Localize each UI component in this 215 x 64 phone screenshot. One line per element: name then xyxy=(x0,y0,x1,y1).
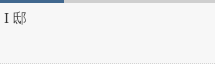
other: Progress 30 percent xyxy=(0,0,215,3)
button[interactable]: I 邸 xyxy=(0,3,215,64)
button[interactable]: Progress 30 percent xyxy=(0,0,215,64)
staticText: I 邸 xyxy=(4,8,27,27)
